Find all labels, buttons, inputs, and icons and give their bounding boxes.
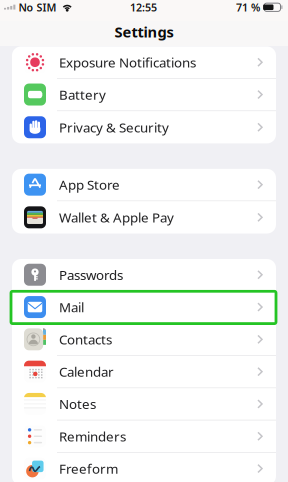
staticText: Privacy & Security <box>59 118 169 136</box>
button[interactable]: App Store <box>12 169 276 201</box>
staticText: Contacts <box>59 330 112 348</box>
staticText: Notes <box>59 395 96 413</box>
staticText: No SIM <box>18 0 56 14</box>
staticText: Calendar <box>59 363 114 380</box>
staticText: App Store <box>59 176 120 193</box>
button[interactable]: Passwords <box>12 259 276 291</box>
staticText: Battery <box>59 86 106 103</box>
staticText: 12:55 <box>130 0 157 14</box>
button[interactable]: Privacy & Security <box>12 111 276 143</box>
button[interactable]: Contacts <box>12 324 276 356</box>
button[interactable]: Freeform <box>12 453 276 482</box>
staticText: Mail <box>59 298 84 316</box>
button[interactable]: Exposure Notifications <box>12 46 276 79</box>
button[interactable]: Battery <box>12 79 276 111</box>
staticText: Passwords <box>59 266 123 284</box>
button[interactable]: Notes <box>12 388 276 420</box>
staticText: Freeform <box>59 460 118 477</box>
button[interactable]: Mail <box>12 291 276 324</box>
button[interactable]: Calendar <box>12 356 276 388</box>
staticText: Wallet & Apple Pay <box>59 208 174 226</box>
staticText: Reminders <box>59 427 126 445</box>
button[interactable]: Reminders <box>12 420 276 453</box>
button[interactable]: Wallet & Apple Pay <box>12 201 276 233</box>
staticText: Exposure Notifications <box>59 53 196 71</box>
staticText: 71 % <box>236 0 260 14</box>
staticText: Settings <box>114 22 173 41</box>
